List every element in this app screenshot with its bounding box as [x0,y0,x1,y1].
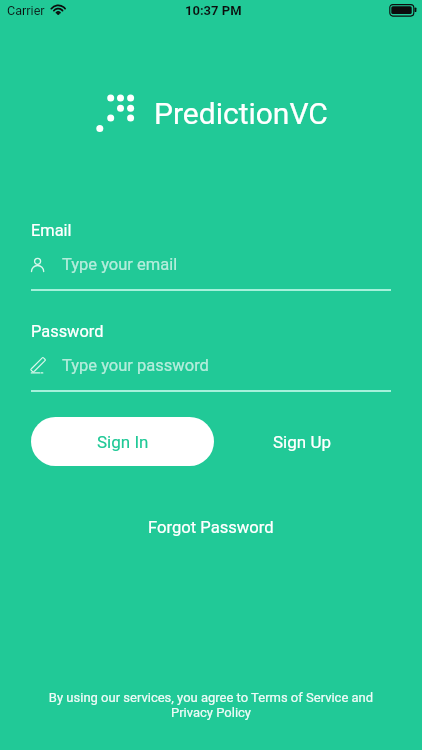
staticText: Email [31,221,72,240]
staticText: 10:37 PM [185,3,242,18]
button[interactable]: Forgot Password [138,511,284,544]
staticText: PredictionVC [154,96,328,131]
other: Password field [31,355,47,373]
staticText: Sign In [97,432,149,452]
staticText: Password [31,322,104,341]
other: Email field [31,254,47,272]
staticText: By using our services, you agree to Term… [32,690,390,720]
staticText: Forgot Password [148,518,274,537]
staticText: Type your password [62,356,209,375]
staticText: Type your email [62,255,178,274]
other: Battery [389,4,417,16]
button[interactable]: Sign In [31,417,214,466]
other: PredictionVC logo [94,93,136,135]
staticText: Carrier [7,3,45,18]
other: Wi-Fi [51,4,66,15]
staticText: Sign Up [273,432,331,452]
button[interactable]: Sign Up [243,417,360,466]
